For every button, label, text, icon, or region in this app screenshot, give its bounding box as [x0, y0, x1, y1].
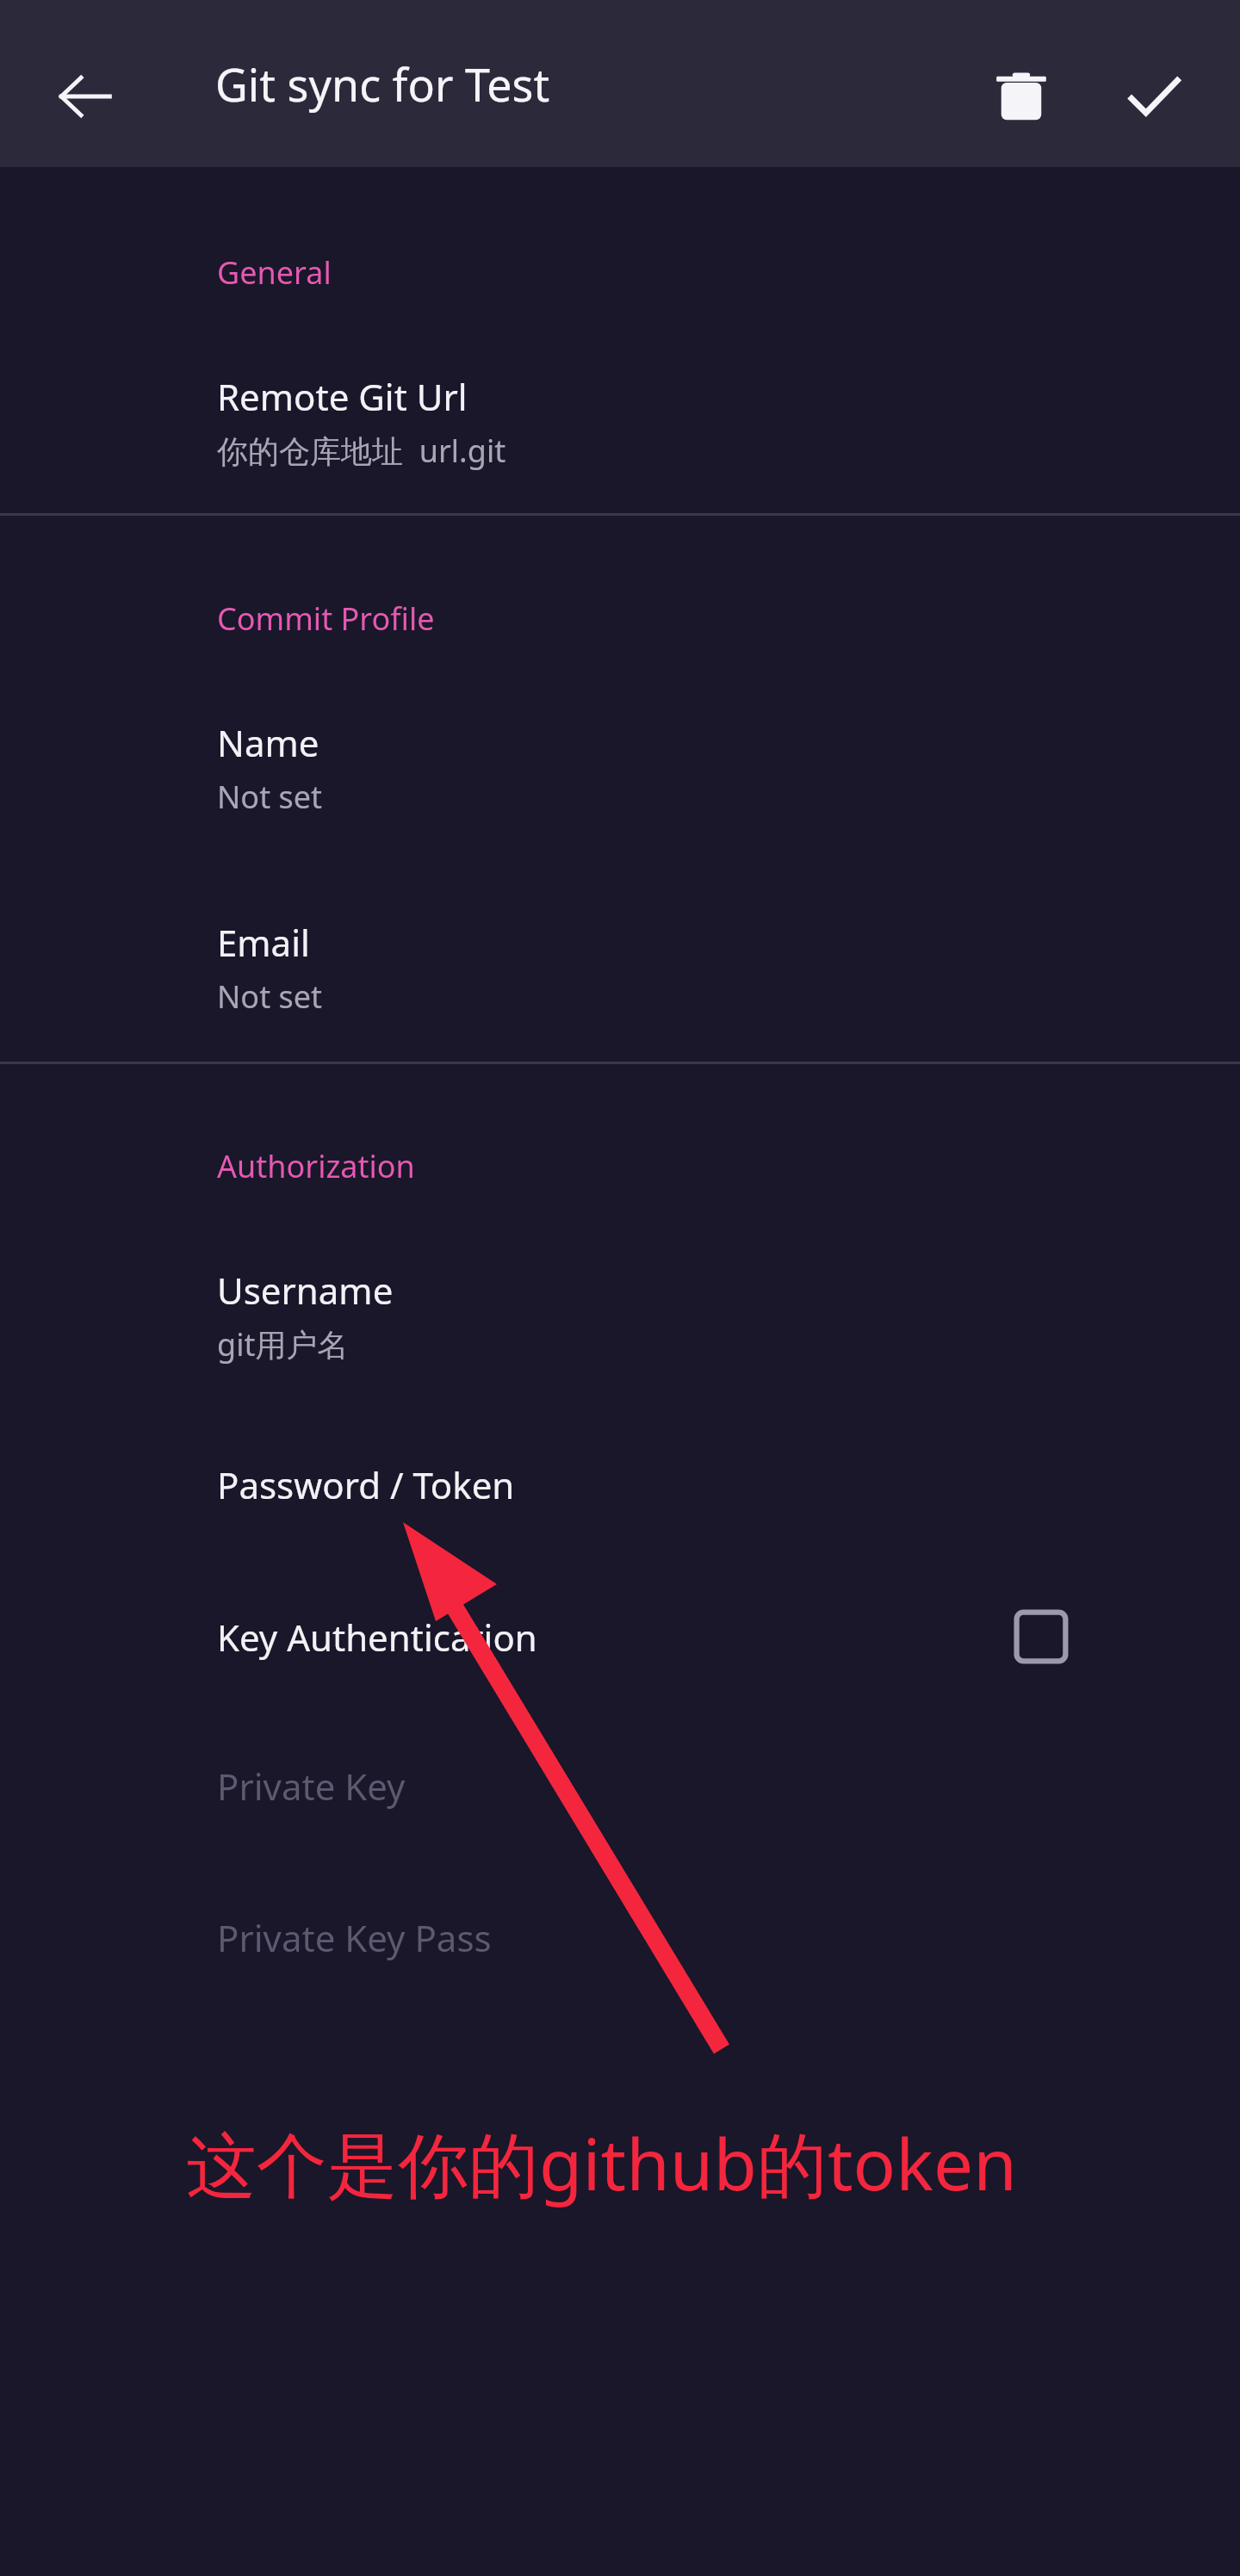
- staticText: Git sync for Test: [215, 53, 550, 115]
- staticText: Authorization: [217, 1145, 415, 1187]
- button[interactable]: Private Key: [0, 1737, 1240, 1835]
- staticText: 这个是你的github的token: [186, 2115, 1017, 2211]
- staticText: 你的仓库地址 url.git: [217, 430, 506, 472]
- staticText: Username: [217, 1266, 394, 1315]
- button[interactable]: Delete: [966, 41, 1076, 152]
- button[interactable]: Remote Git Url: [0, 348, 1240, 496]
- button[interactable]: Name: [0, 694, 1240, 842]
- staticText: Email: [217, 918, 310, 967]
- button[interactable]: Save: [1099, 41, 1209, 152]
- button[interactable]: Password / Token: [0, 1436, 1240, 1533]
- staticText: Remote Git Url: [217, 372, 468, 421]
- staticText: git用户名: [217, 1323, 349, 1365]
- button[interactable]: Email: [0, 894, 1240, 1042]
- staticText: Not set: [217, 776, 323, 818]
- staticText: General: [217, 251, 332, 294]
- staticText: Not set: [217, 975, 323, 1018]
- staticText: Password / Token: [217, 1460, 515, 1509]
- staticText: Key Authentication: [217, 1613, 537, 1662]
- staticText: Private Key: [217, 1762, 406, 1811]
- button[interactable]: Key Authentication: [0, 1579, 1240, 1694]
- staticText: Name: [217, 718, 319, 767]
- button[interactable]: Private Key Pass: [0, 1889, 1240, 1986]
- staticText: Commit Profile: [217, 598, 435, 640]
- button[interactable]: Back: [31, 43, 138, 150]
- staticText: Private Key Pass: [217, 1913, 492, 1962]
- button[interactable]: Username: [0, 1242, 1240, 1390]
